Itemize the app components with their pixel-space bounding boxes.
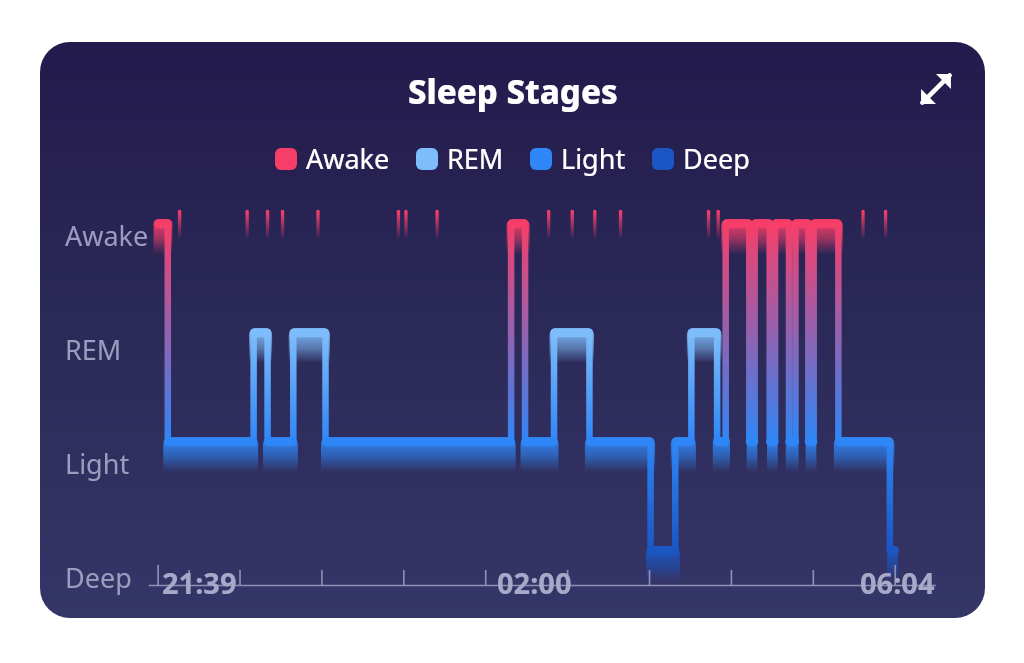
button[interactable]: REM <box>414 138 506 179</box>
staticText: Light <box>561 140 626 177</box>
staticText: Deep <box>683 140 750 177</box>
button[interactable]: Deep <box>650 138 752 179</box>
staticText: Light <box>65 445 130 482</box>
staticText: REM <box>65 331 122 368</box>
button[interactable]: Awake <box>40 193 985 604</box>
staticText: Awake <box>306 140 390 177</box>
staticText: Deep <box>65 559 132 596</box>
button[interactable]: Light <box>528 138 628 179</box>
button[interactable]: Expand chart <box>907 60 965 118</box>
staticText: 02:00 <box>497 563 572 602</box>
staticText: 21:39 <box>162 563 237 602</box>
staticText: Sleep Stages <box>408 69 618 114</box>
staticText: REM <box>447 140 504 177</box>
staticText: Awake <box>65 217 149 254</box>
staticText: 06:04 <box>860 563 935 602</box>
button[interactable]: Awake <box>273 138 392 179</box>
